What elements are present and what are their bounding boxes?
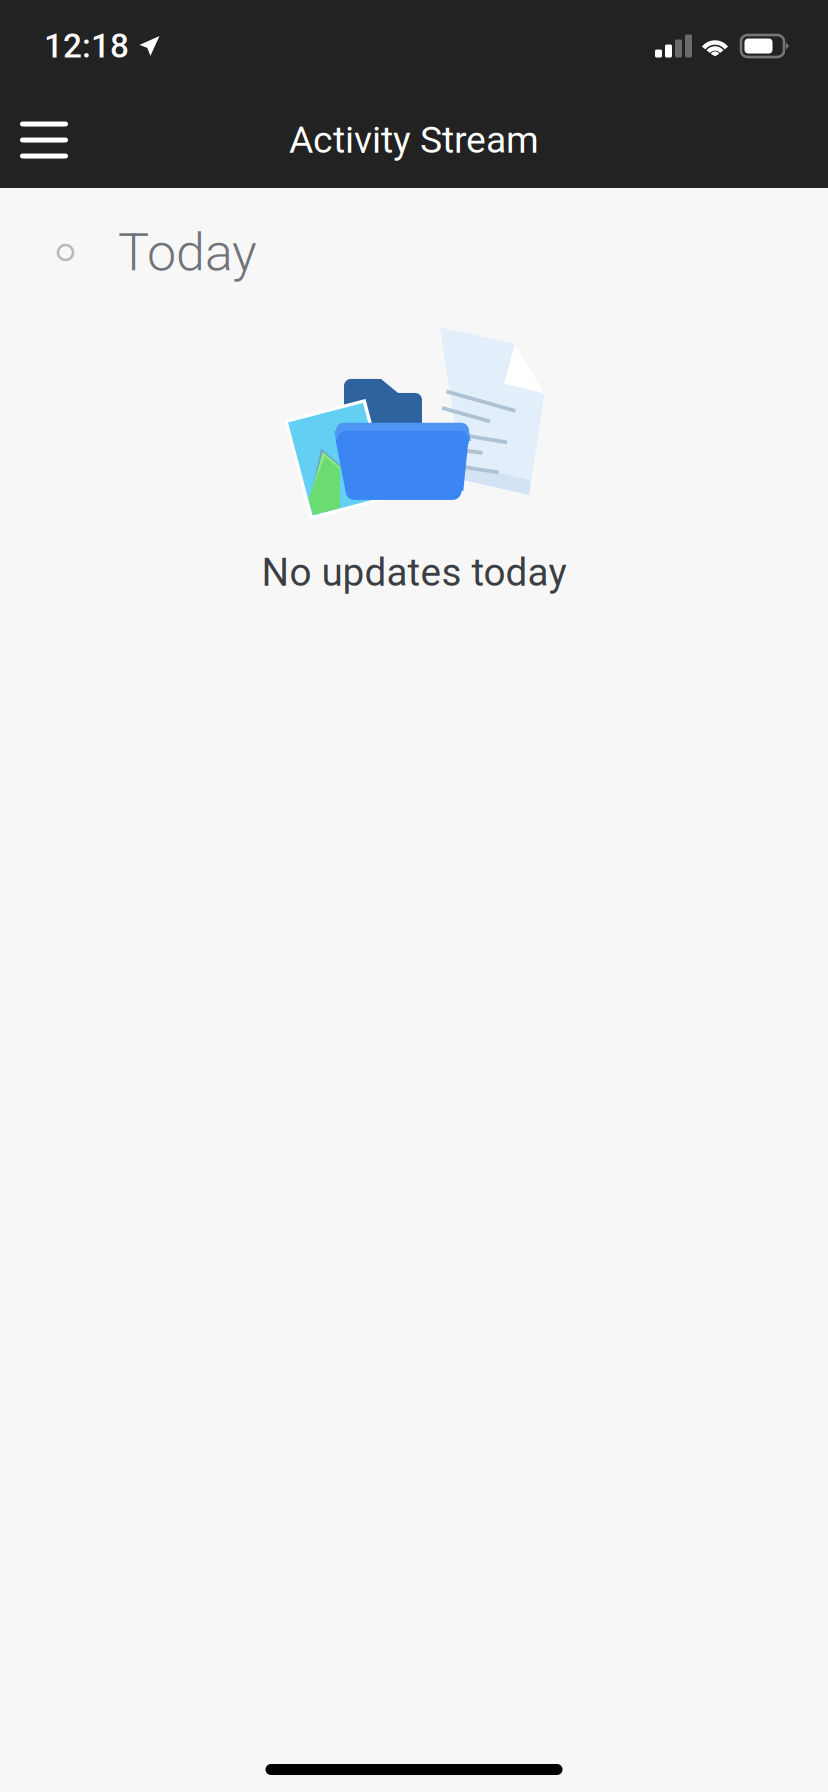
staticText: Activity Stream: [289, 118, 539, 162]
staticText: Today: [118, 222, 257, 283]
button[interactable]: Menu: [0, 92, 94, 187]
staticText: 12:18: [44, 26, 129, 66]
staticText: No updates today: [261, 550, 566, 595]
